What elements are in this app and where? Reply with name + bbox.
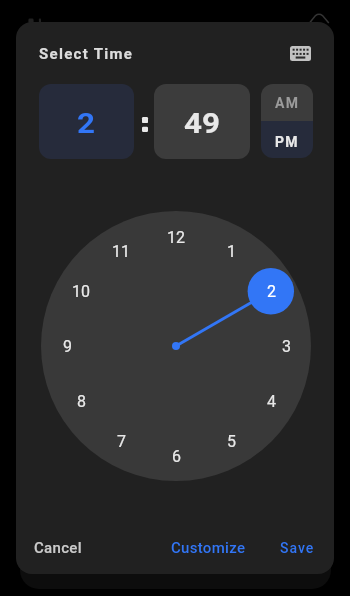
button[interactable]: 7 (99, 419, 143, 463)
button[interactable]: 4 (249, 379, 293, 423)
staticText: 12 (167, 228, 185, 247)
staticText: Select Time (39, 45, 134, 63)
staticText: 49 (184, 107, 221, 140)
staticText: 9 (63, 337, 72, 356)
button[interactable]: 2 (39, 84, 134, 159)
button[interactable]: PM (261, 121, 313, 158)
button[interactable]: 8 (59, 379, 103, 423)
staticText: 2 (267, 282, 276, 301)
button[interactable]: AM (261, 84, 313, 121)
staticText: AM (275, 95, 300, 111)
button[interactable]: 3 (264, 324, 308, 368)
staticText: 1 (227, 242, 236, 261)
staticText: 10 (72, 282, 90, 301)
staticText: 8 (77, 392, 86, 411)
staticText: Save (280, 540, 315, 556)
button[interactable]: Save (268, 530, 327, 566)
staticText: 11 (112, 242, 130, 261)
button[interactable]: 10 (59, 269, 103, 313)
button[interactable]: 5 (209, 419, 253, 463)
button[interactable]: Cancel (22, 530, 94, 566)
staticText: 2 (77, 107, 96, 140)
staticText: 6 (172, 447, 181, 466)
button[interactable]: 2 (249, 269, 293, 313)
button[interactable]: 9 (45, 324, 89, 368)
button[interactable]: 11 (99, 229, 143, 273)
staticText: 5 (227, 432, 236, 451)
button[interactable]: Customize (159, 530, 258, 566)
button[interactable]: 1 (209, 229, 253, 273)
staticText: 7 (117, 432, 126, 451)
button[interactable]: Switch to text input (284, 37, 316, 69)
staticText: 3 (282, 337, 291, 356)
staticText: 4 (267, 392, 276, 411)
button[interactable]: 6 (154, 434, 198, 478)
button[interactable]: 12 (154, 215, 198, 259)
staticText: Cancel (34, 539, 82, 557)
staticText: PM (275, 134, 299, 150)
staticText: Customize (171, 539, 246, 557)
button[interactable]: 49 (154, 84, 250, 159)
